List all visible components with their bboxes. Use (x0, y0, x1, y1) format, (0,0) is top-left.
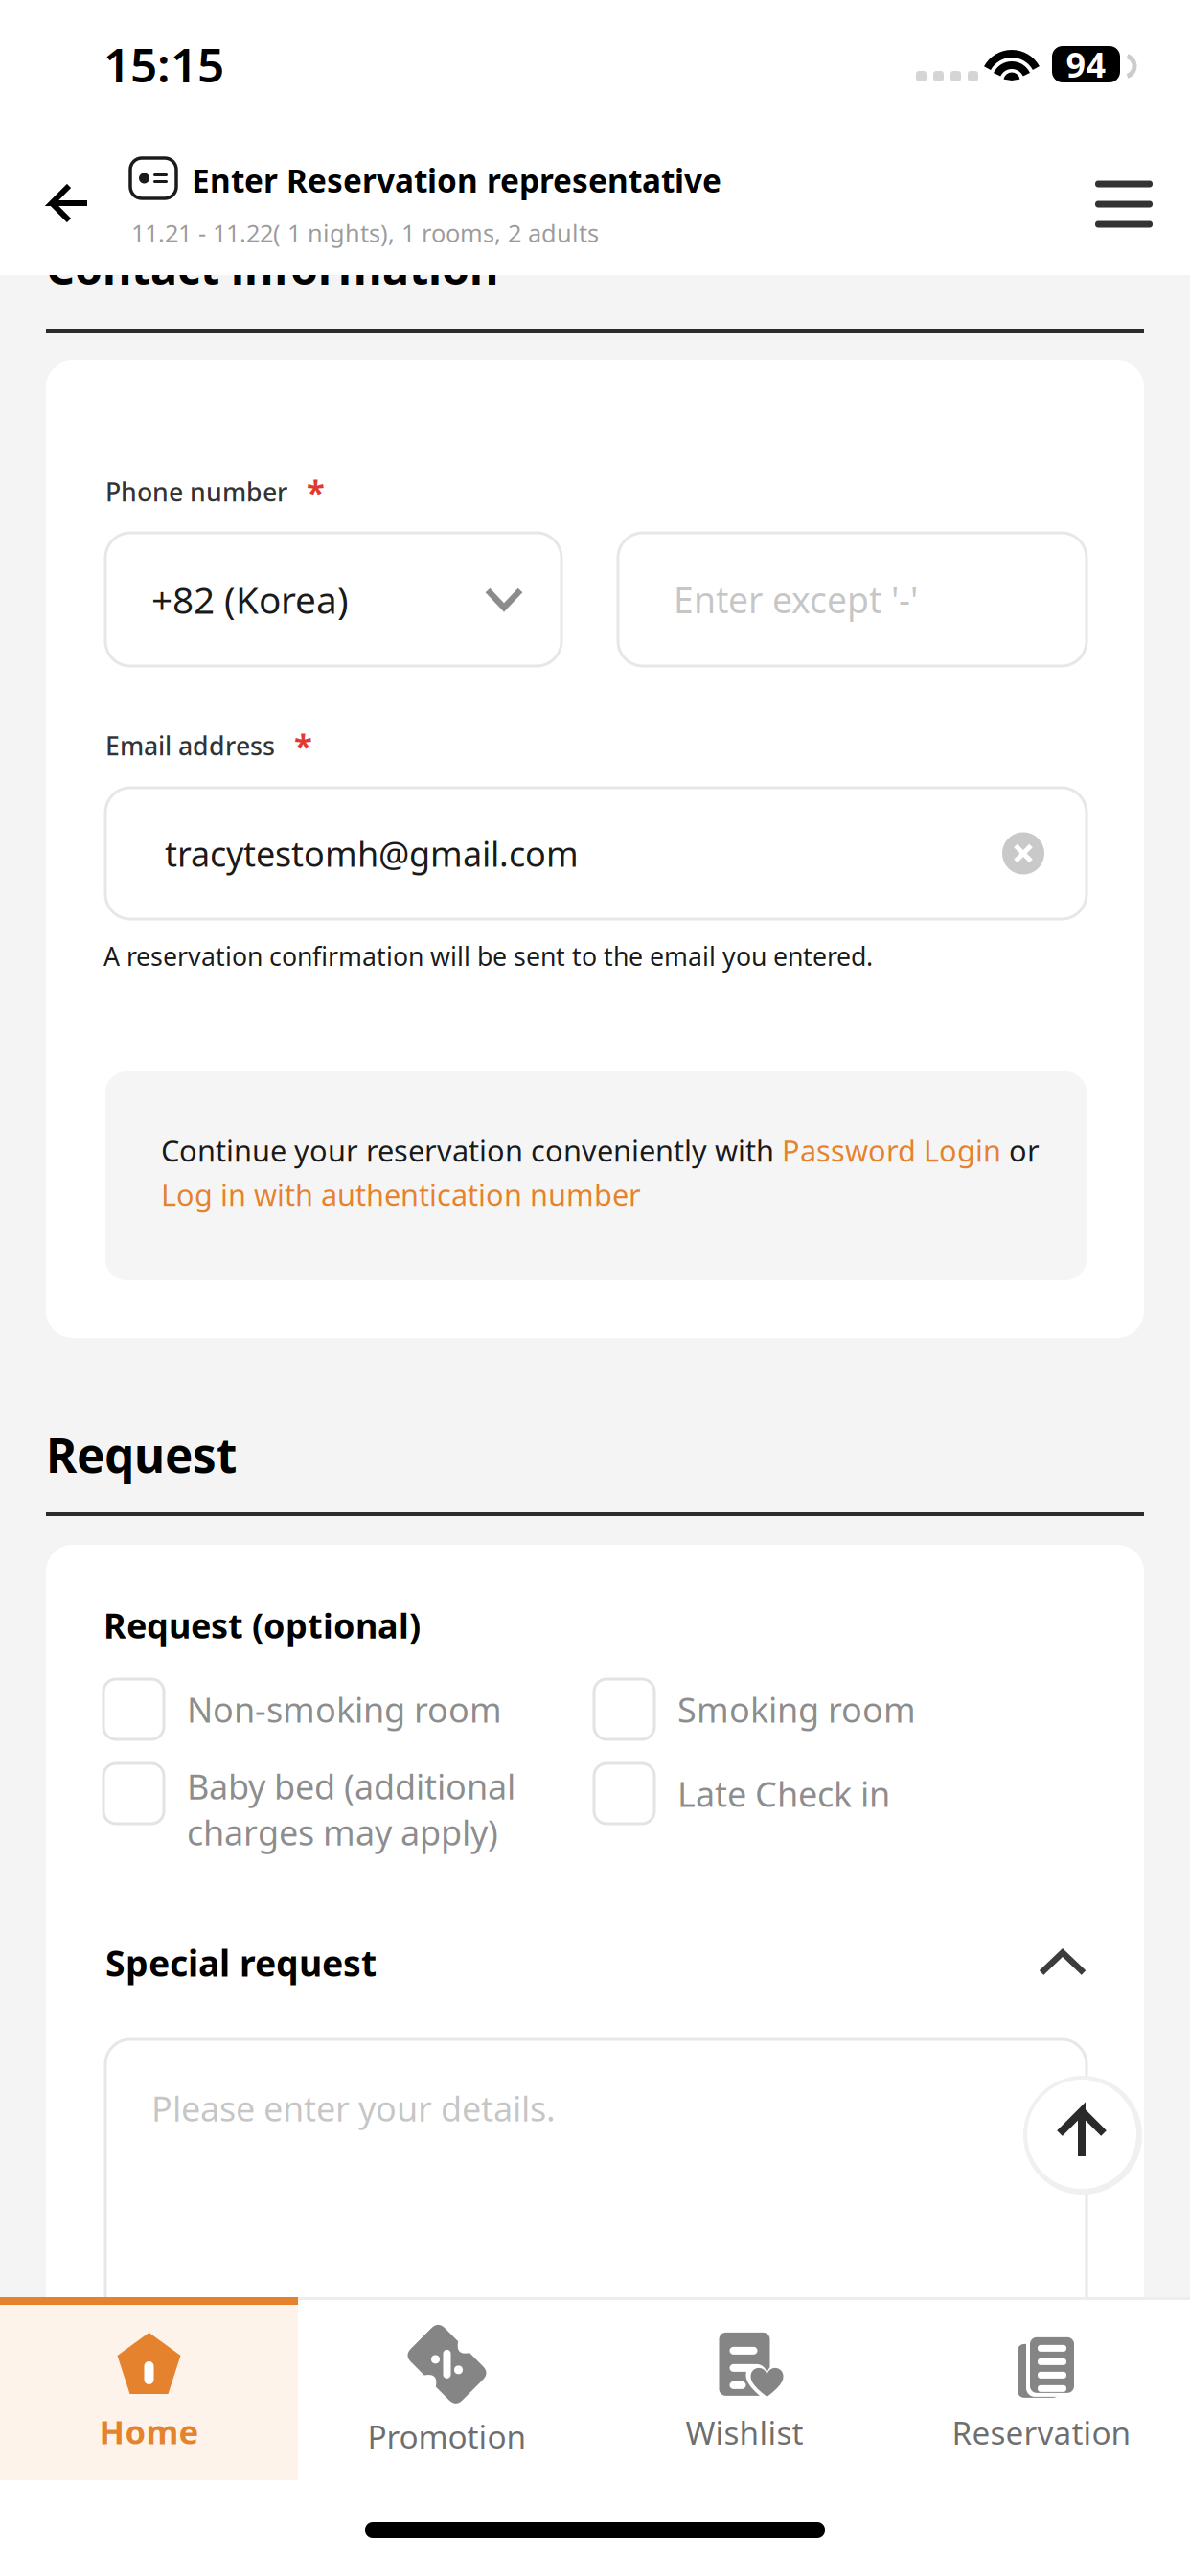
button[interactable]: Scroll to top (1027, 2080, 1136, 2189)
staticText: Enter Reservation representative (192, 159, 721, 202)
staticText: Baby bed (additional charges may apply) (187, 1763, 515, 1855)
staticText: 94 (1066, 41, 1106, 87)
staticText: Special request (105, 1939, 377, 1986)
staticText: Request (optional) (103, 1602, 421, 1648)
staticText: Password Login (782, 1131, 1001, 1170)
staticText: Wishlist (686, 2411, 803, 2454)
button[interactable]: Enter except '-' (618, 533, 1087, 666)
staticText: Email address (105, 729, 275, 763)
staticText: Log in with authentication number (161, 1175, 641, 1214)
button[interactable]: Home (0, 2304, 298, 2480)
button[interactable]: Non-smoking room (103, 1679, 502, 1739)
button[interactable]: Wishlist (596, 2304, 893, 2480)
button[interactable]: Log in with authentication number (161, 1175, 698, 1214)
staticText: A reservation confirmation will be sent … (103, 939, 873, 973)
staticText: Enter except '-' (674, 576, 918, 623)
staticText: 11.21 - 11.22( 1 nights), 1 rooms, 2 adu… (131, 217, 599, 249)
button[interactable]: Late Check in (594, 1763, 890, 1824)
button[interactable]: +82 (Korea) (105, 533, 561, 666)
button[interactable]: Special request (105, 1936, 1087, 1989)
button[interactable]: Back (49, 182, 90, 224)
button[interactable]: Password Login (782, 1131, 1001, 1170)
button[interactable]: Baby bed (additional charges may apply) (103, 1763, 541, 1855)
staticText: or (1001, 1131, 1040, 1170)
staticText: +82 (Korea) (151, 575, 349, 624)
staticText: Late Check in (677, 1771, 890, 1816)
button[interactable]: Reservation (893, 2304, 1190, 2480)
staticText: Please enter your details. (151, 2085, 556, 2131)
staticText: tracytestomh@gmail.com (165, 830, 579, 876)
staticText: Promotion (367, 2415, 526, 2457)
button[interactable]: Promotion (298, 2304, 596, 2480)
button[interactable]: Menu (1066, 156, 1181, 252)
staticText: Contact information (46, 238, 498, 297)
staticText: Home (99, 2409, 199, 2453)
staticText: * (307, 470, 325, 514)
staticText: * (294, 724, 312, 768)
staticText: 15:15 (103, 33, 224, 95)
staticText: Phone number (105, 475, 287, 509)
staticText: Smoking room (677, 1686, 916, 1732)
staticText: Request (46, 1423, 237, 1486)
staticText: Non-smoking room (187, 1686, 502, 1732)
button[interactable]: tracytestomh@gmail.com (105, 788, 1087, 919)
button[interactable]: Smoking room (594, 1679, 916, 1739)
staticText: Reservation (952, 2411, 1131, 2454)
staticText: Continue your reservation conveniently w… (161, 1131, 782, 1170)
